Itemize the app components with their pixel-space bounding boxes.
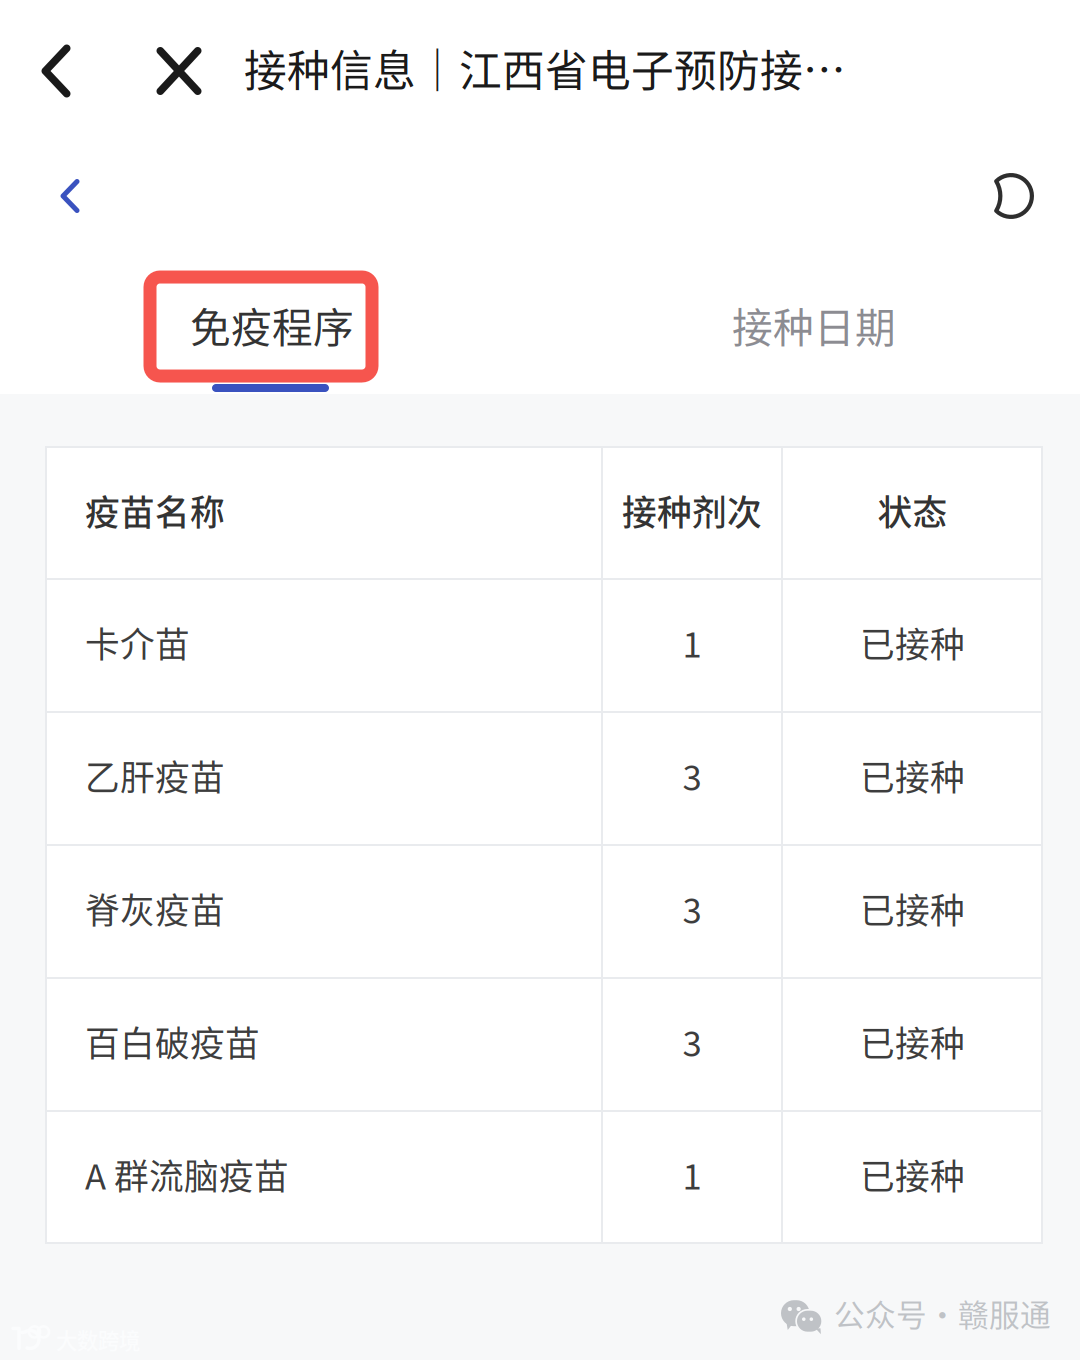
staticText: 乙肝疫苗 [85, 750, 225, 801]
staticText: 疫苗名称 [85, 485, 225, 536]
staticText: 免疫程序 [190, 296, 354, 354]
staticText: 接种信息｜江西省电子预防接… [244, 37, 846, 99]
staticText: 已接种 [860, 617, 965, 668]
staticText: 3 [682, 1016, 701, 1067]
staticText: 已接种 [860, 883, 965, 934]
staticText: 已接种 [860, 750, 965, 801]
staticText: 卡介苗 [85, 617, 190, 668]
staticText: 1 [682, 617, 701, 668]
staticText: 3 [682, 750, 701, 801]
button[interactable]: 关闭小程序 [133, 16, 225, 126]
staticText: 1 [682, 1149, 701, 1200]
staticText: 接种剂次 [622, 485, 762, 536]
staticText: 已接种 [860, 1149, 965, 1200]
staticText: 已接种 [860, 1016, 965, 1067]
button[interactable]: 返回 [10, 16, 102, 126]
button[interactable]: 接种日期 [540, 262, 1080, 394]
button[interactable]: 免疫程序 [0, 262, 540, 394]
staticText: A 群流脑疫苗 [85, 1149, 289, 1200]
staticText: 状态 [877, 485, 947, 536]
button[interactable]: 夜间模式 [967, 148, 1063, 244]
staticText: 3 [682, 883, 701, 934]
staticText: 公众号·赣服通 [834, 1291, 1051, 1335]
staticText: 脊灰疫苗 [85, 883, 225, 934]
button[interactable]: 返回上一页 [22, 148, 118, 244]
staticText: 接种日期 [732, 296, 896, 354]
staticText: 百白破疫苗 [85, 1016, 260, 1067]
